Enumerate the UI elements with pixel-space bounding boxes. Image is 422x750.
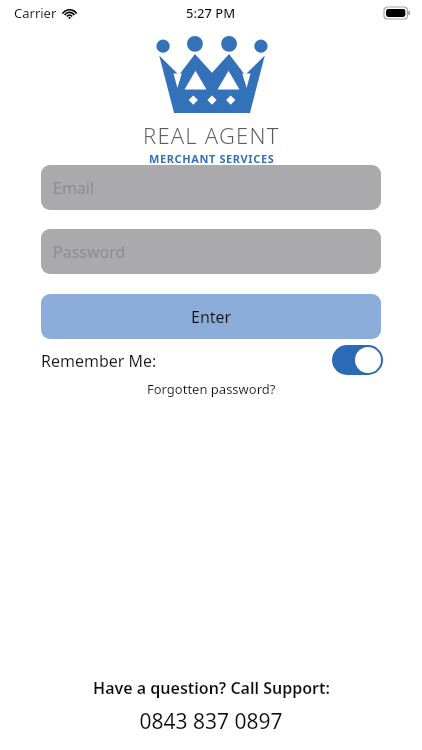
button[interactable]: Forgotten password? [147,380,276,398]
staticText: Enter [191,306,232,328]
staticText: Carrier [14,4,57,22]
staticText: Email [53,177,95,199]
staticText: REAL AGENT [143,120,280,150]
staticText: Have a question? Call Support: [93,677,330,699]
staticText: Password [53,241,126,263]
button[interactable]: Remember Me toggle, on [332,345,383,375]
button[interactable]: Email [41,165,381,210]
button[interactable]: Enter [41,294,381,339]
button[interactable]: 0843 837 0897 [139,707,283,736]
staticText: 5:27 PM [186,4,236,22]
button[interactable]: Remember Me: [41,350,157,372]
button[interactable]: Password [41,229,381,274]
staticText: MERCHANT SERVICES [149,151,275,166]
